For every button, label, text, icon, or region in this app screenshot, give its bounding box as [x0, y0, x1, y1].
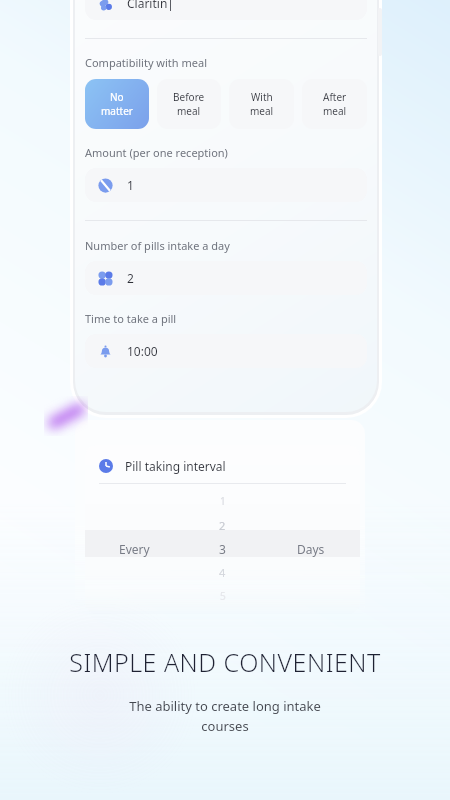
- button[interactable]: No: [85, 79, 149, 129]
- staticText: 1: [127, 177, 134, 193]
- staticText: With: [251, 90, 273, 104]
- button[interactable]: 10:00: [85, 334, 367, 368]
- staticText: Every: [119, 541, 150, 557]
- staticText: meal: [177, 104, 201, 118]
- button[interactable]: Before: [157, 79, 221, 129]
- button[interactable]: After: [302, 79, 367, 129]
- staticText: SIMPLE AND CONVENIENT: [69, 645, 381, 679]
- button[interactable]: 2: [85, 261, 367, 295]
- staticText: 10:00: [127, 343, 158, 359]
- staticText: 2: [219, 518, 226, 533]
- staticText: 3: [219, 541, 226, 557]
- staticText: The ability to create long intake course…: [129, 697, 321, 735]
- staticText: Claritin|: [127, 0, 174, 11]
- staticText: 2: [127, 270, 134, 286]
- staticText: 4: [219, 565, 226, 580]
- button[interactable]: With: [229, 79, 294, 129]
- staticText: 5: [220, 589, 226, 603]
- button[interactable]: 1: [85, 168, 367, 202]
- staticText: No: [110, 90, 124, 104]
- button[interactable]: Pill taking interval: [85, 445, 360, 483]
- staticText: Time to take a pill: [85, 311, 177, 326]
- staticText: meal: [323, 104, 347, 118]
- button[interactable]: Claritin|: [85, 0, 367, 20]
- staticText: Amount (per one reception): [85, 145, 228, 160]
- staticText: Days: [297, 541, 325, 557]
- staticText: Number of pills intake a day: [85, 238, 230, 253]
- staticText: After: [323, 90, 347, 104]
- staticText: meal: [250, 104, 274, 118]
- staticText: Before: [173, 90, 205, 104]
- staticText: matter: [101, 104, 133, 118]
- staticText: 1: [220, 494, 226, 508]
- staticText: Pill taking interval: [125, 458, 226, 474]
- staticText: Compatibility with meal: [85, 55, 207, 70]
